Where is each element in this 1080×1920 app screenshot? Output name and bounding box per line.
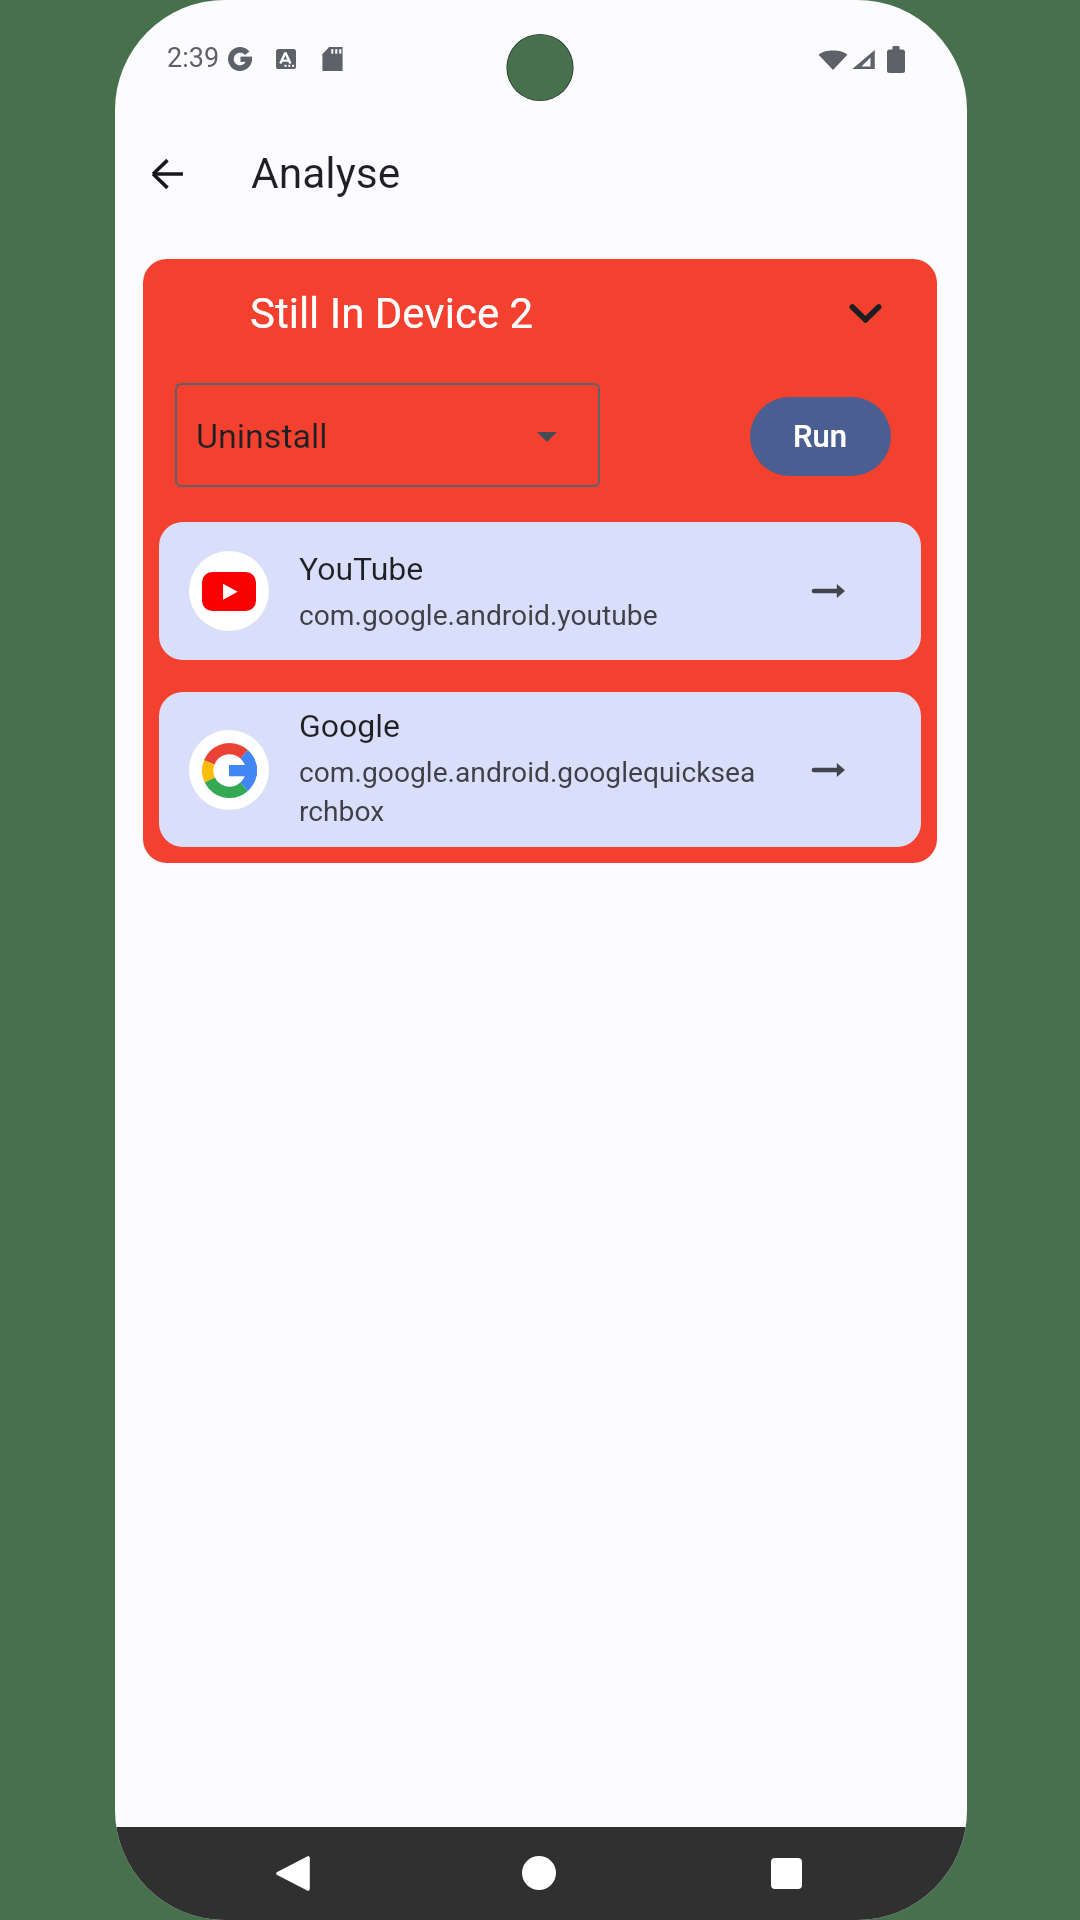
button[interactable]: Recents: [750, 1837, 822, 1909]
other: Open: [813, 584, 845, 598]
staticText: com.google.android.googlequicksea rchbox: [299, 756, 756, 828]
staticText: Uninstall: [196, 416, 328, 456]
button[interactable]: YouTube: [159, 522, 921, 660]
staticText: Still In Device 2: [250, 289, 534, 338]
other: Open: [813, 763, 845, 777]
staticText: Run: [793, 418, 848, 454]
staticText: Google: [299, 707, 401, 745]
button[interactable]: Back: [257, 1837, 329, 1909]
staticText: 2:39: [167, 42, 220, 74]
button[interactable]: Home: [503, 1837, 575, 1909]
button[interactable]: Uninstall: [175, 383, 600, 487]
button[interactable]: Google: [159, 692, 921, 847]
staticText: YouTube: [299, 550, 424, 588]
button[interactable]: Run: [750, 397, 891, 476]
button[interactable]: Back: [131, 138, 203, 210]
staticText: Analyse: [251, 149, 401, 199]
button[interactable]: Still In Device 2: [159, 275, 921, 347]
staticText: com.google.android.youtube: [299, 599, 658, 632]
other: Collapse: [849, 296, 882, 330]
